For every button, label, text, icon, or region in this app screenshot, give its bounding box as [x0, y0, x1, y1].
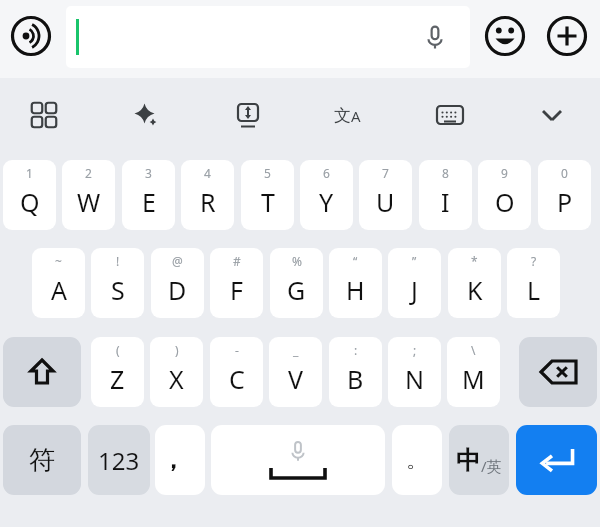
- button[interactable]: 6: [300, 160, 353, 230]
- button[interactable]: ~: [32, 248, 85, 318]
- button[interactable]: 1: [3, 160, 56, 230]
- button[interactable]: Numbers: [88, 425, 150, 495]
- button[interactable]: Space: [211, 425, 385, 495]
- button[interactable]: Translate: [323, 91, 371, 139]
- staticText: 123: [98, 444, 140, 477]
- staticText: P: [557, 185, 573, 219]
- button[interactable]: ”: [388, 248, 441, 318]
- staticText: Q: [20, 185, 40, 219]
- button[interactable]: Enter: [516, 425, 597, 495]
- staticText: 3: [145, 165, 152, 181]
- staticText: ，: [161, 445, 185, 475]
- staticText: 6: [323, 165, 330, 181]
- staticText: V: [288, 362, 304, 396]
- button[interactable]: *: [448, 248, 501, 318]
- staticText: X: [169, 362, 184, 396]
- staticText: T: [261, 185, 275, 219]
- staticText: ;: [413, 342, 417, 358]
- button[interactable]: Comma: [155, 425, 205, 495]
- button[interactable]: (: [91, 337, 144, 407]
- button[interactable]: ;: [388, 337, 441, 407]
- staticText: “: [353, 253, 358, 269]
- button[interactable]: #: [210, 248, 263, 318]
- staticText: H: [346, 273, 365, 307]
- button[interactable]: 0: [538, 160, 591, 230]
- staticText: C: [229, 362, 245, 396]
- staticText: 符: [29, 444, 55, 477]
- button[interactable]: 7: [359, 160, 412, 230]
- staticText: ~: [55, 253, 62, 269]
- staticText: K: [467, 273, 483, 307]
- staticText: ?: [531, 253, 537, 269]
- staticText: 1: [26, 165, 33, 181]
- staticText: #: [233, 253, 241, 269]
- button[interactable]: Chinese English toggle: [449, 425, 509, 495]
- staticText: A: [351, 106, 361, 126]
- button[interactable]: Add: [544, 13, 590, 59]
- button[interactable]: Symbols: [3, 425, 81, 495]
- button[interactable]: !: [91, 248, 144, 318]
- staticText: -: [235, 342, 239, 358]
- staticText: R: [200, 185, 216, 219]
- staticText: B: [347, 362, 364, 396]
- staticText: %: [292, 253, 302, 269]
- staticText: *: [471, 253, 478, 269]
- staticText: 2: [85, 165, 92, 181]
- button[interactable]: Keyboard layout: [426, 91, 474, 139]
- staticText: 。: [406, 446, 428, 474]
- button[interactable]: _: [269, 337, 322, 407]
- staticText: 4: [204, 165, 211, 181]
- button[interactable]: Voice input: [8, 13, 54, 59]
- staticText: N: [405, 362, 425, 396]
- button[interactable]: ): [150, 337, 203, 407]
- button[interactable]: Apps: [20, 91, 68, 139]
- staticText: W: [77, 185, 101, 219]
- staticText: Z: [110, 362, 125, 396]
- staticText: 9: [501, 165, 508, 181]
- button[interactable]: 2: [62, 160, 115, 230]
- button[interactable]: ?: [507, 248, 560, 318]
- button[interactable]: 5: [241, 160, 294, 230]
- button[interactable]: 3: [122, 160, 175, 230]
- staticText: M: [462, 362, 485, 396]
- staticText: 中: [456, 445, 481, 476]
- staticText: 8: [442, 165, 449, 181]
- button[interactable]: Shift: [3, 337, 81, 407]
- button[interactable]: 4: [181, 160, 234, 230]
- staticText: L: [527, 273, 541, 307]
- staticText: 0: [561, 165, 568, 181]
- button[interactable]: \: [447, 337, 500, 407]
- staticText: Y: [319, 185, 334, 219]
- staticText: ): [175, 342, 179, 358]
- button[interactable]: Backspace: [519, 337, 597, 407]
- staticText: _: [293, 342, 299, 358]
- staticText: E: [142, 185, 156, 219]
- button[interactable]: 9: [478, 160, 531, 230]
- button[interactable]: Dictate: [66, 6, 470, 68]
- button[interactable]: Hide keyboard: [528, 91, 576, 139]
- staticText: @: [172, 253, 183, 269]
- staticText: O: [495, 185, 515, 219]
- button[interactable]: “: [329, 248, 382, 318]
- button[interactable]: :: [329, 337, 382, 407]
- button[interactable]: Period: [392, 425, 442, 495]
- staticText: ”: [412, 253, 417, 269]
- button[interactable]: @: [151, 248, 204, 318]
- button[interactable]: Emoji: [482, 13, 528, 59]
- staticText: :: [354, 342, 358, 358]
- staticText: \: [471, 342, 476, 358]
- button[interactable]: AI assist: [122, 91, 170, 139]
- staticText: 文: [334, 105, 351, 126]
- staticText: 5: [264, 165, 271, 181]
- staticText: U: [376, 185, 395, 219]
- button[interactable]: 8: [419, 160, 472, 230]
- button[interactable]: -: [210, 337, 263, 407]
- staticText: S: [111, 273, 125, 307]
- staticText: !: [116, 253, 120, 269]
- button[interactable]: %: [270, 248, 323, 318]
- staticText: /英: [481, 456, 502, 476]
- staticText: G: [287, 273, 306, 307]
- button[interactable]: Dictate: [420, 22, 450, 52]
- button[interactable]: Clipboard: [224, 91, 272, 139]
- staticText: 7: [382, 165, 389, 181]
